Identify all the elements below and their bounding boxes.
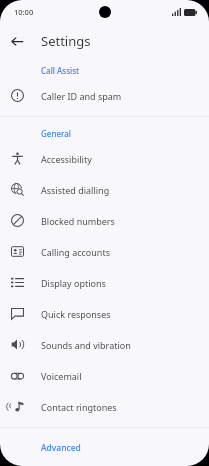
staticText: Call Assist	[41, 65, 80, 76]
button[interactable]: Caller ID and spam	[0, 80, 209, 111]
button[interactable]: Blocked numbers	[0, 205, 209, 236]
button[interactable]: Contact ringtones	[0, 391, 209, 422]
staticText: Display options	[41, 277, 106, 289]
staticText: General	[41, 128, 71, 139]
button[interactable]: Display options	[0, 267, 209, 298]
button[interactable]: Sounds and vibration	[0, 329, 209, 360]
staticText: Calling accounts	[41, 246, 110, 258]
staticText: Accessibility	[41, 153, 92, 165]
staticText: Settings	[41, 32, 91, 50]
button[interactable]: Voicemail	[0, 360, 209, 391]
staticText: Quick responses	[41, 308, 111, 320]
button[interactable]: Calling accounts	[0, 236, 209, 267]
staticText: Contact ringtones	[41, 401, 117, 413]
staticText: Voicemail	[41, 370, 82, 382]
button[interactable]: Accessibility	[0, 143, 209, 174]
staticText: Caller ID and spam	[41, 90, 122, 102]
staticText: Assisted dialling	[41, 184, 110, 196]
button[interactable]: Quick responses	[0, 298, 209, 329]
button[interactable]: Back	[6, 30, 29, 53]
staticText: 10:00	[14, 7, 34, 17]
button[interactable]: Advanced	[0, 428, 209, 460]
staticText: Blocked numbers	[41, 215, 115, 227]
button[interactable]: Assisted dialling	[0, 174, 209, 205]
staticText: Sounds and vibration	[41, 339, 131, 351]
staticText: Advanced	[41, 442, 81, 454]
